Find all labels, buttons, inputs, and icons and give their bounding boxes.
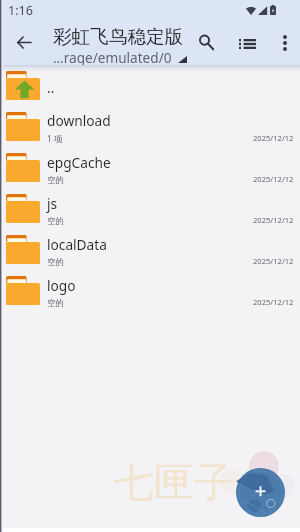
staticText: localData — [47, 235, 107, 254]
button[interactable]: Back — [0, 20, 48, 65]
staticText: 2025/12/12 — [253, 256, 294, 266]
button[interactable]: js — [0, 188, 300, 229]
staticText: epgCache — [47, 153, 111, 172]
button[interactable]: List view — [226, 20, 269, 65]
button[interactable]: epgCache — [0, 147, 300, 188]
staticText: 2025/12/12 — [253, 174, 294, 184]
staticText: 空的 — [47, 216, 64, 227]
staticText: 2025/12/12 — [253, 215, 294, 225]
staticText: 七匣子 — [114, 457, 234, 507]
staticText: .. — [47, 78, 55, 97]
staticText: logo — [47, 276, 76, 295]
button[interactable]: localData — [0, 229, 300, 270]
button[interactable]: download — [0, 106, 300, 147]
button[interactable]: Search — [187, 20, 226, 65]
staticText: 2025/12/12 — [253, 133, 294, 143]
staticText: js — [47, 194, 58, 213]
button[interactable]: 彩虹飞鸟稳定版 — [48, 20, 187, 65]
staticText: 1 项 — [47, 133, 63, 145]
staticText: 彩虹飞鸟稳定版 — [53, 25, 184, 48]
button[interactable]: .. — [0, 65, 300, 106]
button[interactable]: More options — [269, 20, 300, 65]
staticText: 2025/12/12 — [253, 297, 294, 307]
staticText: download — [47, 111, 111, 130]
staticText: 空的 — [47, 257, 64, 268]
button[interactable]: logo — [0, 270, 300, 311]
staticText: …rage/emulated/0 — [53, 48, 172, 65]
staticText: 空的 — [47, 175, 64, 186]
staticText: 1:16 — [8, 2, 33, 19]
staticText: 空的 — [47, 298, 64, 309]
